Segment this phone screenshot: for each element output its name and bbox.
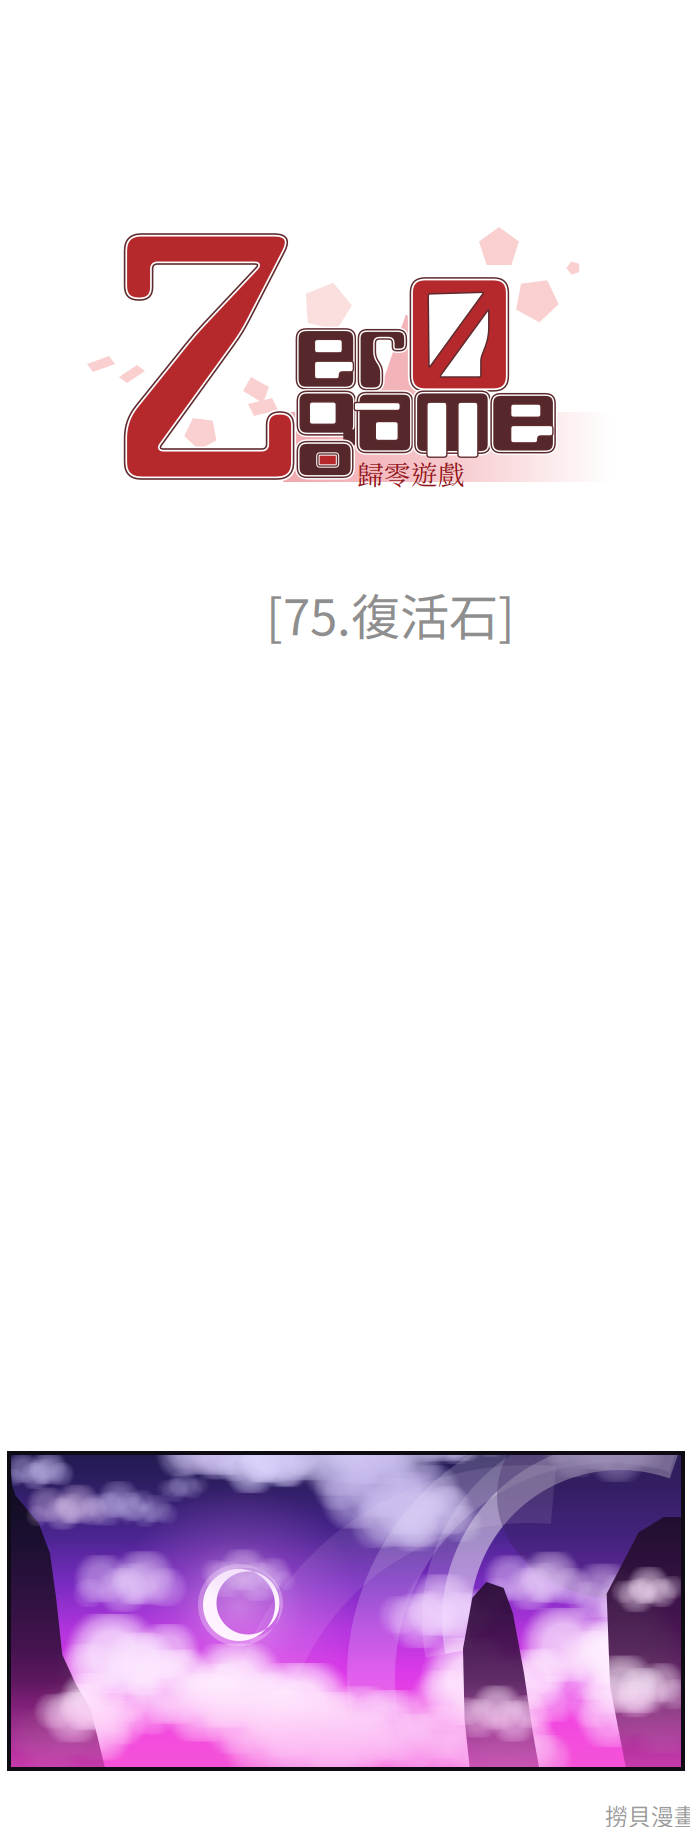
staticText: 歸零遊戲 [357,454,465,492]
staticText: 撈貝漫畫 [605,1799,690,1832]
staticText: [75.復活石] [266,578,515,649]
